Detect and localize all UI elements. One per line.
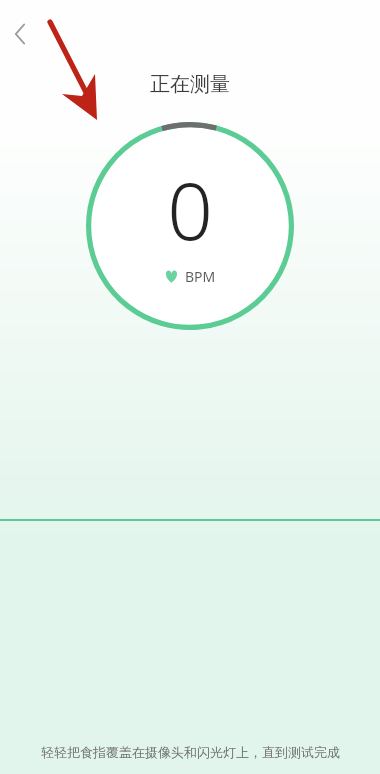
staticText: 0	[167, 154, 213, 263]
staticText: 轻轻把食指覆盖在摄像头和闪光灯上，直到测试完成	[41, 744, 340, 760]
staticText: 正在测量	[150, 72, 230, 97]
staticText: BPM	[185, 267, 216, 286]
button[interactable]: Back	[2, 16, 38, 52]
